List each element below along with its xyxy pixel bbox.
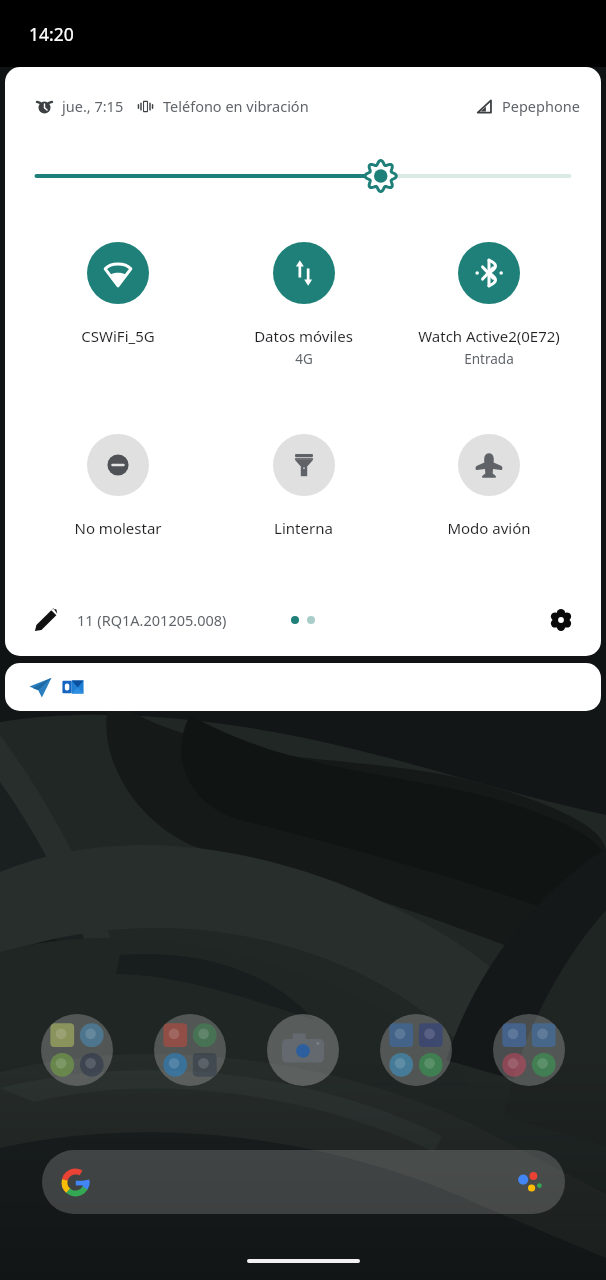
button[interactable]: No molestar — [25, 434, 211, 538]
button[interactable]: App folder — [493, 1014, 565, 1086]
staticText: Pepephone — [502, 96, 580, 116]
button[interactable]: Datos móviles — [211, 242, 396, 368]
button[interactable]: Watch Active2(0E72) — [396, 242, 581, 368]
staticText: No molestar — [74, 518, 162, 538]
staticText: Watch Active2(0E72) — [418, 326, 560, 346]
staticText: Datos móviles — [254, 326, 353, 346]
staticText: Linterna — [274, 518, 333, 538]
button[interactable]: App folder — [154, 1014, 226, 1086]
staticText: Entrada — [464, 350, 514, 368]
button[interactable] — [5, 663, 601, 711]
button[interactable]: Edit — [26, 600, 66, 640]
button[interactable]: Modo avión — [396, 434, 581, 538]
staticText: 14:20 — [29, 22, 74, 46]
button[interactable]: CSWiFi_5G — [25, 242, 211, 346]
button[interactable]: App folder — [380, 1014, 452, 1086]
button[interactable]: Camera — [267, 1014, 339, 1086]
button[interactable]: Linterna — [211, 434, 396, 538]
button[interactable]: Settings — [541, 600, 581, 640]
staticText: 4G — [295, 350, 313, 368]
button[interactable]: Brightness — [35, 163, 571, 189]
staticText: Teléfono en vibración — [163, 96, 309, 116]
button[interactable]: Search — [42, 1150, 565, 1214]
staticText: jue., 7:15 — [62, 96, 124, 116]
button[interactable]: App folder — [41, 1014, 113, 1086]
staticText: 11 (RQ1A.201205.008) — [77, 610, 227, 630]
staticText: Modo avión — [447, 518, 531, 538]
staticText: CSWiFi_5G — [81, 326, 155, 346]
